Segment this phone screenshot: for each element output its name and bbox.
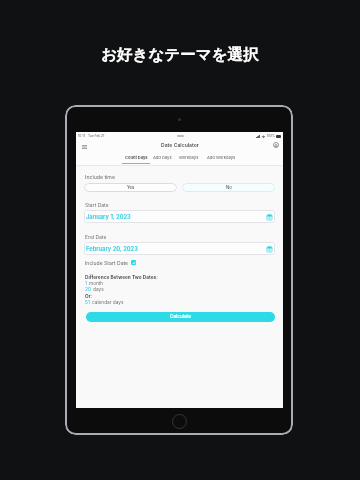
staticText: February 20, 2023 (86, 245, 138, 252)
staticText: calendar days (92, 299, 124, 305)
staticText: 1 (85, 280, 89, 286)
staticText: 20 (85, 286, 93, 292)
button[interactable]: Calculate (86, 312, 275, 322)
button[interactable]: Menu (78, 140, 90, 153)
staticText: 100% (267, 134, 276, 138)
button[interactable]: Include Start Date (85, 258, 136, 267)
button[interactable]: No (182, 183, 275, 192)
staticText: Date Calculator (161, 142, 199, 148)
button[interactable]: Count Days (119, 151, 153, 163)
staticText: お好きなテーマを選択 (101, 45, 259, 65)
button[interactable]: Add Workdays (204, 151, 238, 163)
staticText: Difference Between Two Dates: (85, 274, 158, 280)
staticText: 10:11 (78, 134, 85, 138)
staticText: January 1, 2023 (86, 213, 131, 220)
button[interactable]: Account (270, 139, 282, 151)
staticText: Or: (85, 293, 93, 299)
staticText: Include time (85, 174, 115, 180)
staticText: Add Days (153, 155, 172, 160)
staticText: Include Start Date (85, 260, 129, 266)
staticText: End Date (85, 234, 107, 240)
staticText: Add Workdays (207, 155, 236, 160)
staticText: Calculate (170, 314, 191, 320)
button[interactable]: Yes (84, 183, 177, 192)
staticText: Start Date (85, 202, 109, 208)
button[interactable]: February 20, 2023 (84, 242, 275, 255)
button[interactable]: Add Days (145, 151, 179, 163)
button[interactable]: January 1, 2023 (84, 210, 275, 223)
staticText: month (89, 280, 104, 286)
staticText: Yes (127, 185, 135, 190)
button[interactable]: Workdays (172, 151, 206, 163)
staticText: 51 (85, 299, 92, 305)
staticText: days (93, 286, 104, 292)
staticText: Count Days (125, 155, 148, 160)
staticText: Tue Feb 21 (88, 134, 105, 138)
staticText: No (226, 185, 232, 190)
staticText: Workdays (179, 155, 199, 160)
